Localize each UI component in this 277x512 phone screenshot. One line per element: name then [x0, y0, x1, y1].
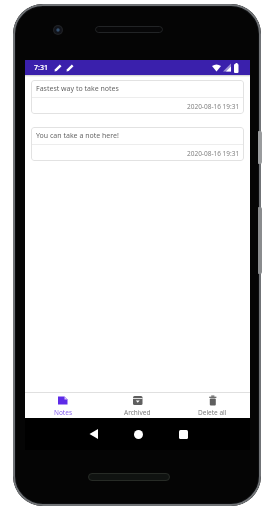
- button[interactable]: [121, 418, 155, 450]
- staticText: You can take a note here!: [36, 131, 119, 141]
- button[interactable]: Fastest way to take notes: [31, 80, 244, 114]
- button[interactable]: [166, 418, 200, 450]
- button[interactable]: You can take a note here!: [31, 127, 244, 161]
- staticText: Archived: [124, 408, 151, 417]
- staticText: 2020-08-16 19:31: [187, 102, 240, 111]
- button[interactable]: Delete all: [175, 393, 250, 418]
- button[interactable]: [76, 418, 110, 450]
- staticText: 7:31: [34, 63, 48, 73]
- staticText: Fastest way to take notes: [36, 84, 119, 94]
- button[interactable]: Archived: [100, 393, 175, 418]
- staticText: Notes: [54, 408, 72, 417]
- button[interactable]: Notes: [25, 393, 100, 418]
- staticText: Delete all: [198, 408, 227, 417]
- staticText: 2020-08-16 19:31: [187, 149, 240, 158]
